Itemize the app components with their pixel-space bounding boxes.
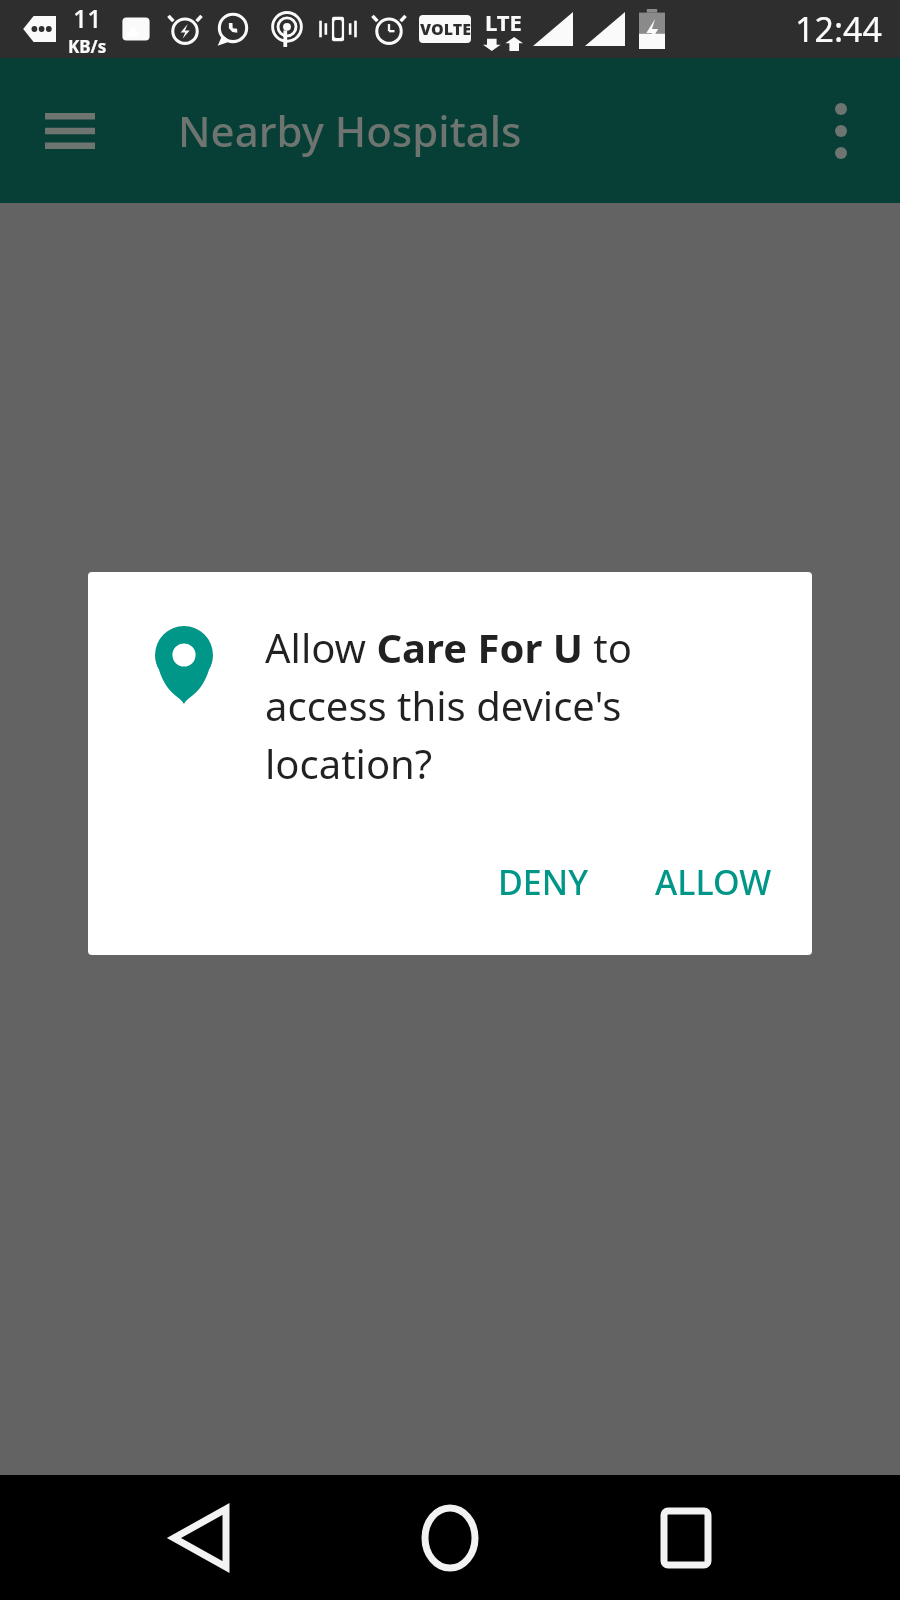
button[interactable]: Home bbox=[402, 1490, 498, 1586]
staticText: KB/s bbox=[68, 35, 107, 58]
button[interactable]: Open navigation drawer bbox=[22, 83, 118, 179]
staticText: LTE bbox=[485, 7, 522, 37]
staticText: 11 bbox=[73, 1, 102, 35]
staticText: ALLOW bbox=[655, 859, 772, 905]
staticText: Allow Care For U to access this device's… bbox=[265, 620, 715, 790]
button[interactable]: ALLOW bbox=[633, 845, 794, 919]
staticText: VOLTE bbox=[420, 18, 471, 40]
button[interactable]: DENY bbox=[476, 845, 611, 919]
button[interactable]: Recent apps bbox=[638, 1490, 734, 1586]
button[interactable]: Back bbox=[152, 1490, 248, 1586]
staticText: Nearby Hospitals bbox=[178, 102, 522, 159]
button[interactable]: More options bbox=[796, 86, 886, 176]
staticText: DENY bbox=[498, 859, 589, 905]
staticText: 12:44 bbox=[795, 6, 882, 52]
